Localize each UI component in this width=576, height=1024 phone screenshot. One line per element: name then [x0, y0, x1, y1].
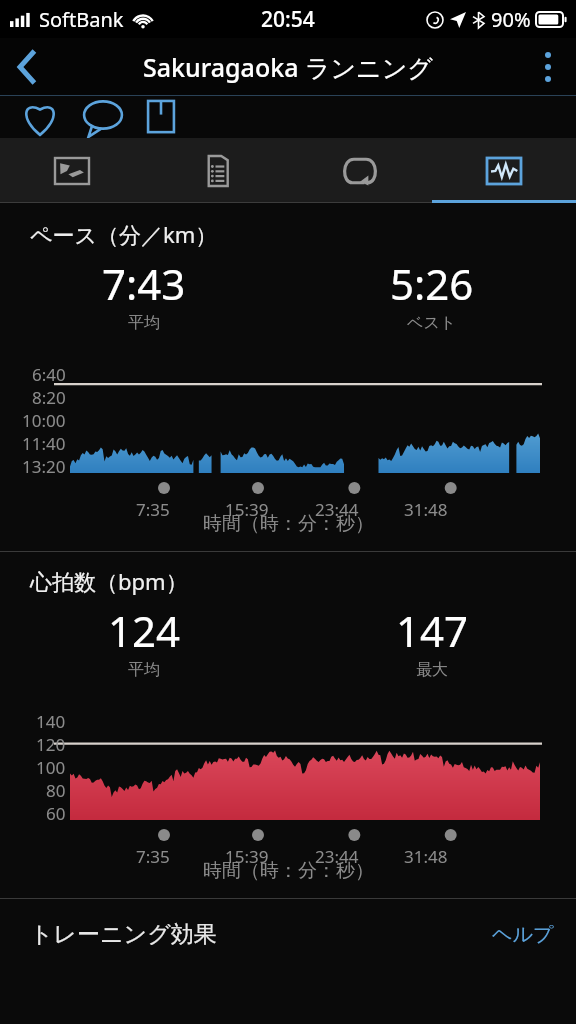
staticText: 100 — [36, 756, 66, 779]
staticText: 11:40 — [22, 432, 66, 455]
staticText: 147 — [396, 602, 469, 659]
staticText: 90% — [491, 6, 531, 33]
button[interactable]: Tab — [144, 138, 288, 203]
staticText: 7:35 — [136, 845, 170, 868]
staticText: 最大 — [416, 660, 448, 680]
staticText: 60 — [46, 802, 66, 820]
staticText: 平均 — [128, 660, 160, 680]
staticText: ヘルプ — [492, 922, 554, 947]
staticText: Sakuragaoka ランニング — [143, 50, 433, 84]
button[interactable]: More options — [520, 39, 576, 95]
staticText: 5:26 — [390, 255, 474, 312]
button[interactable]: トレーニング効果 — [0, 899, 576, 969]
staticText: 80 — [46, 779, 66, 802]
staticText: 平均 — [128, 313, 160, 333]
button[interactable]: Back — [0, 39, 56, 95]
button[interactable]: Tab — [432, 138, 576, 203]
staticText: 時間（時：分：秒） — [203, 512, 374, 536]
staticText: 時間（時：分：秒） — [203, 859, 374, 883]
staticText: 15:39 — [225, 498, 269, 521]
staticText: 20:54 — [261, 5, 315, 34]
staticText: 124 — [108, 602, 181, 659]
staticText: 7:35 — [136, 498, 170, 521]
staticText: 8:20 — [32, 386, 66, 409]
staticText: 31:48 — [404, 498, 448, 521]
staticText: ペース（分／km） — [30, 219, 218, 249]
staticText: 10:00 — [22, 409, 66, 432]
staticText: 7:43 — [102, 255, 186, 312]
staticText: SoftBank — [39, 6, 124, 33]
staticText: 120 — [36, 733, 66, 756]
staticText: 13:20 — [22, 455, 66, 473]
button[interactable]: Tab — [288, 138, 432, 203]
button[interactable]: Tab — [0, 138, 144, 203]
staticText: 23:44 — [315, 498, 359, 521]
staticText: トレーニング効果 — [30, 920, 217, 949]
staticText: 15:39 — [225, 845, 269, 868]
staticText: 6:40 — [32, 363, 66, 386]
staticText: 心拍数（bpm） — [30, 566, 188, 596]
staticText: 31:48 — [404, 845, 448, 868]
staticText: ベスト — [407, 313, 457, 333]
staticText: 23:44 — [315, 845, 359, 868]
staticText: 140 — [36, 710, 66, 733]
